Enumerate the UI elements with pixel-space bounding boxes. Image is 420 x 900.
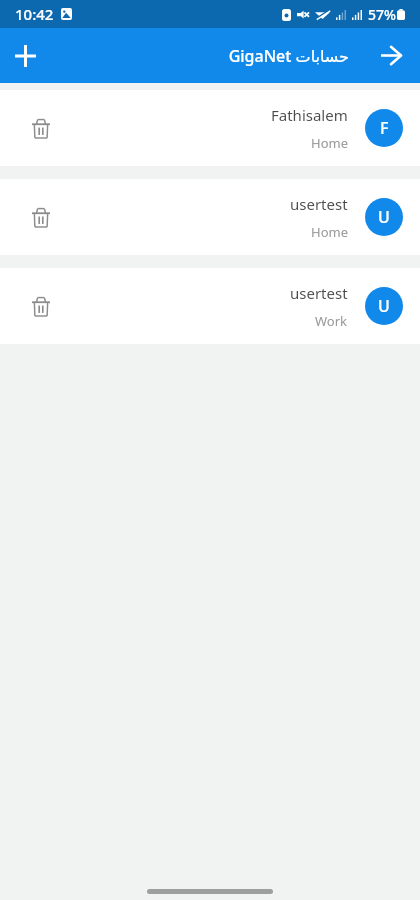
staticText: U (378, 206, 390, 228)
staticText: Home (311, 134, 348, 152)
staticText: F (380, 117, 389, 139)
staticText: Work (315, 312, 348, 330)
button[interactable]: Back (362, 28, 420, 83)
button[interactable]: Delete (0, 179, 420, 255)
button[interactable]: Delete (24, 289, 58, 323)
button[interactable]: Delete (0, 90, 420, 166)
staticText: 57% (368, 5, 396, 24)
staticText: Home (311, 223, 348, 241)
button[interactable]: Delete (24, 200, 58, 234)
staticText: U (378, 295, 390, 317)
button[interactable]: Delete (24, 111, 58, 145)
staticText: usertest (290, 194, 348, 214)
button[interactable]: Add account (0, 28, 50, 83)
staticText: Fathisalem (271, 105, 348, 125)
button[interactable]: Delete (0, 268, 420, 344)
staticText: 10:42 (15, 4, 54, 24)
staticText: حسابات GigaNet (228, 45, 349, 67)
staticText: usertest (290, 283, 348, 303)
